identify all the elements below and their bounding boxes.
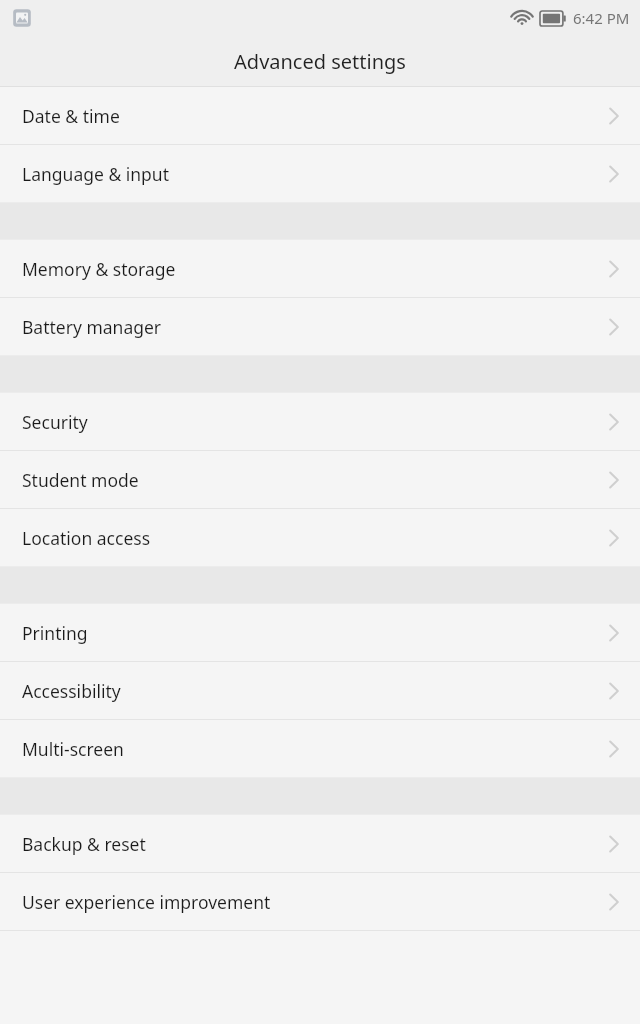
staticText: Advanced settings (234, 48, 406, 75)
button[interactable]: User experience improvement (0, 873, 640, 930)
staticText: 6:42 PM (573, 8, 630, 28)
staticText: Location access (22, 526, 608, 550)
button[interactable]: Student mode (0, 451, 640, 508)
button[interactable]: Date & time (0, 87, 640, 144)
staticText: Security (22, 410, 608, 434)
staticText: Language & input (22, 162, 608, 186)
staticText: Memory & storage (22, 257, 608, 281)
staticText: User experience improvement (22, 890, 608, 914)
button[interactable]: Backup & reset (0, 815, 640, 872)
staticText: Printing (22, 621, 608, 645)
button[interactable]: Memory & storage (0, 240, 640, 297)
button[interactable]: Location access (0, 509, 640, 566)
staticText: Student mode (22, 468, 608, 492)
staticText: Date & time (22, 104, 608, 128)
staticText: Backup & reset (22, 832, 608, 856)
button[interactable]: Security (0, 393, 640, 450)
button[interactable]: Accessibility (0, 662, 640, 719)
button[interactable]: Multi-screen (0, 720, 640, 777)
button[interactable]: Battery manager (0, 298, 640, 355)
button[interactable]: Printing (0, 604, 640, 661)
staticText: Multi-screen (22, 737, 608, 761)
staticText: Battery manager (22, 315, 608, 339)
button[interactable]: Language & input (0, 145, 640, 202)
other: Screenshot notification (12, 8, 32, 28)
staticText: Accessibility (22, 679, 608, 703)
